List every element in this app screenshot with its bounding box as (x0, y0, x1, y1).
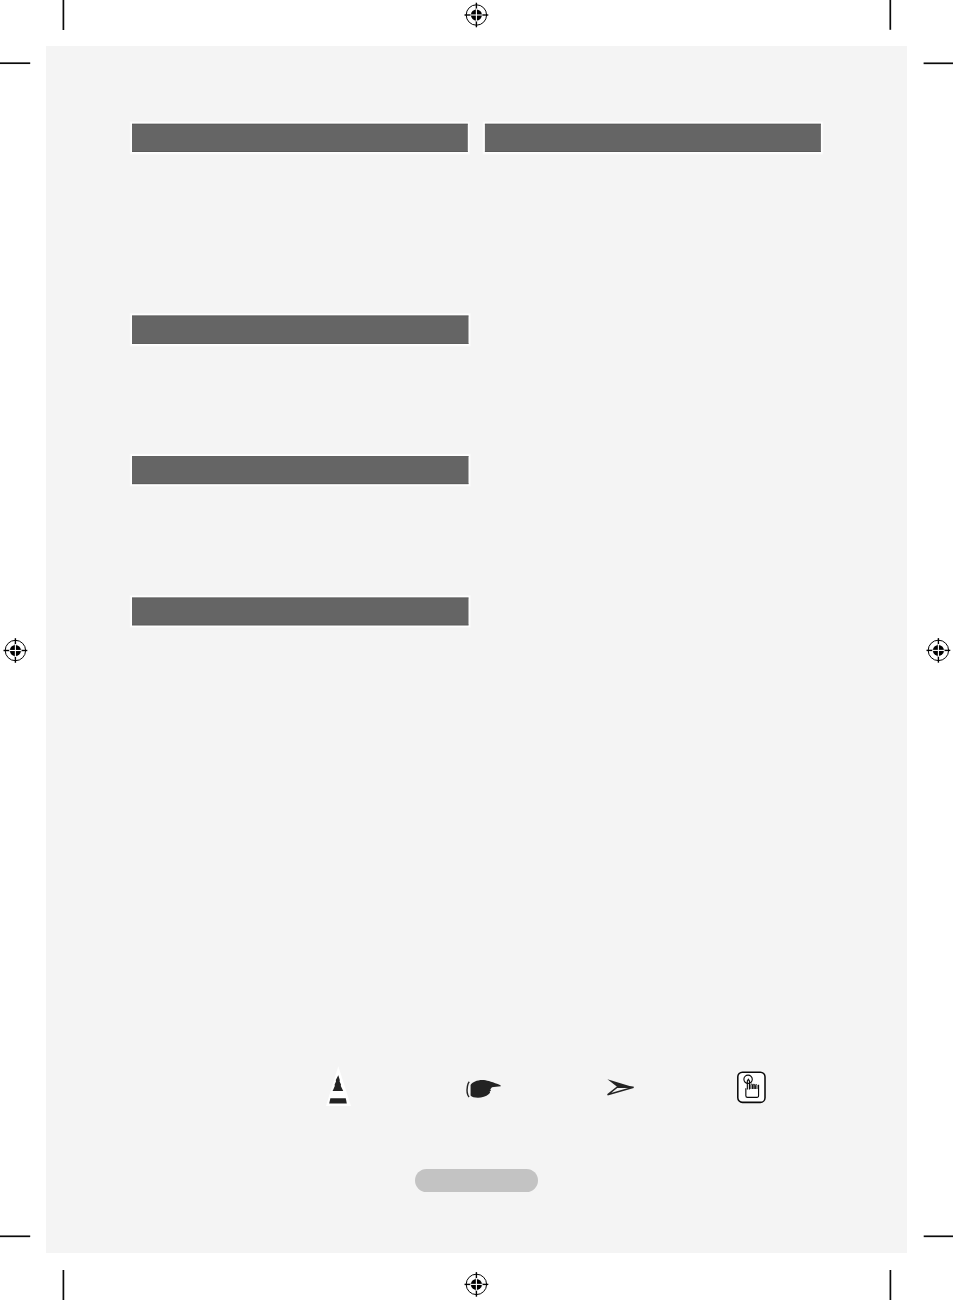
button[interactable]: Spruce tree (326, 1066, 351, 1106)
button[interactable]: Send (607, 1079, 634, 1095)
button[interactable] (415, 1169, 538, 1192)
button[interactable]: Tap gesture (736, 1071, 766, 1104)
button[interactable]: Pointing hand (467, 1079, 501, 1098)
